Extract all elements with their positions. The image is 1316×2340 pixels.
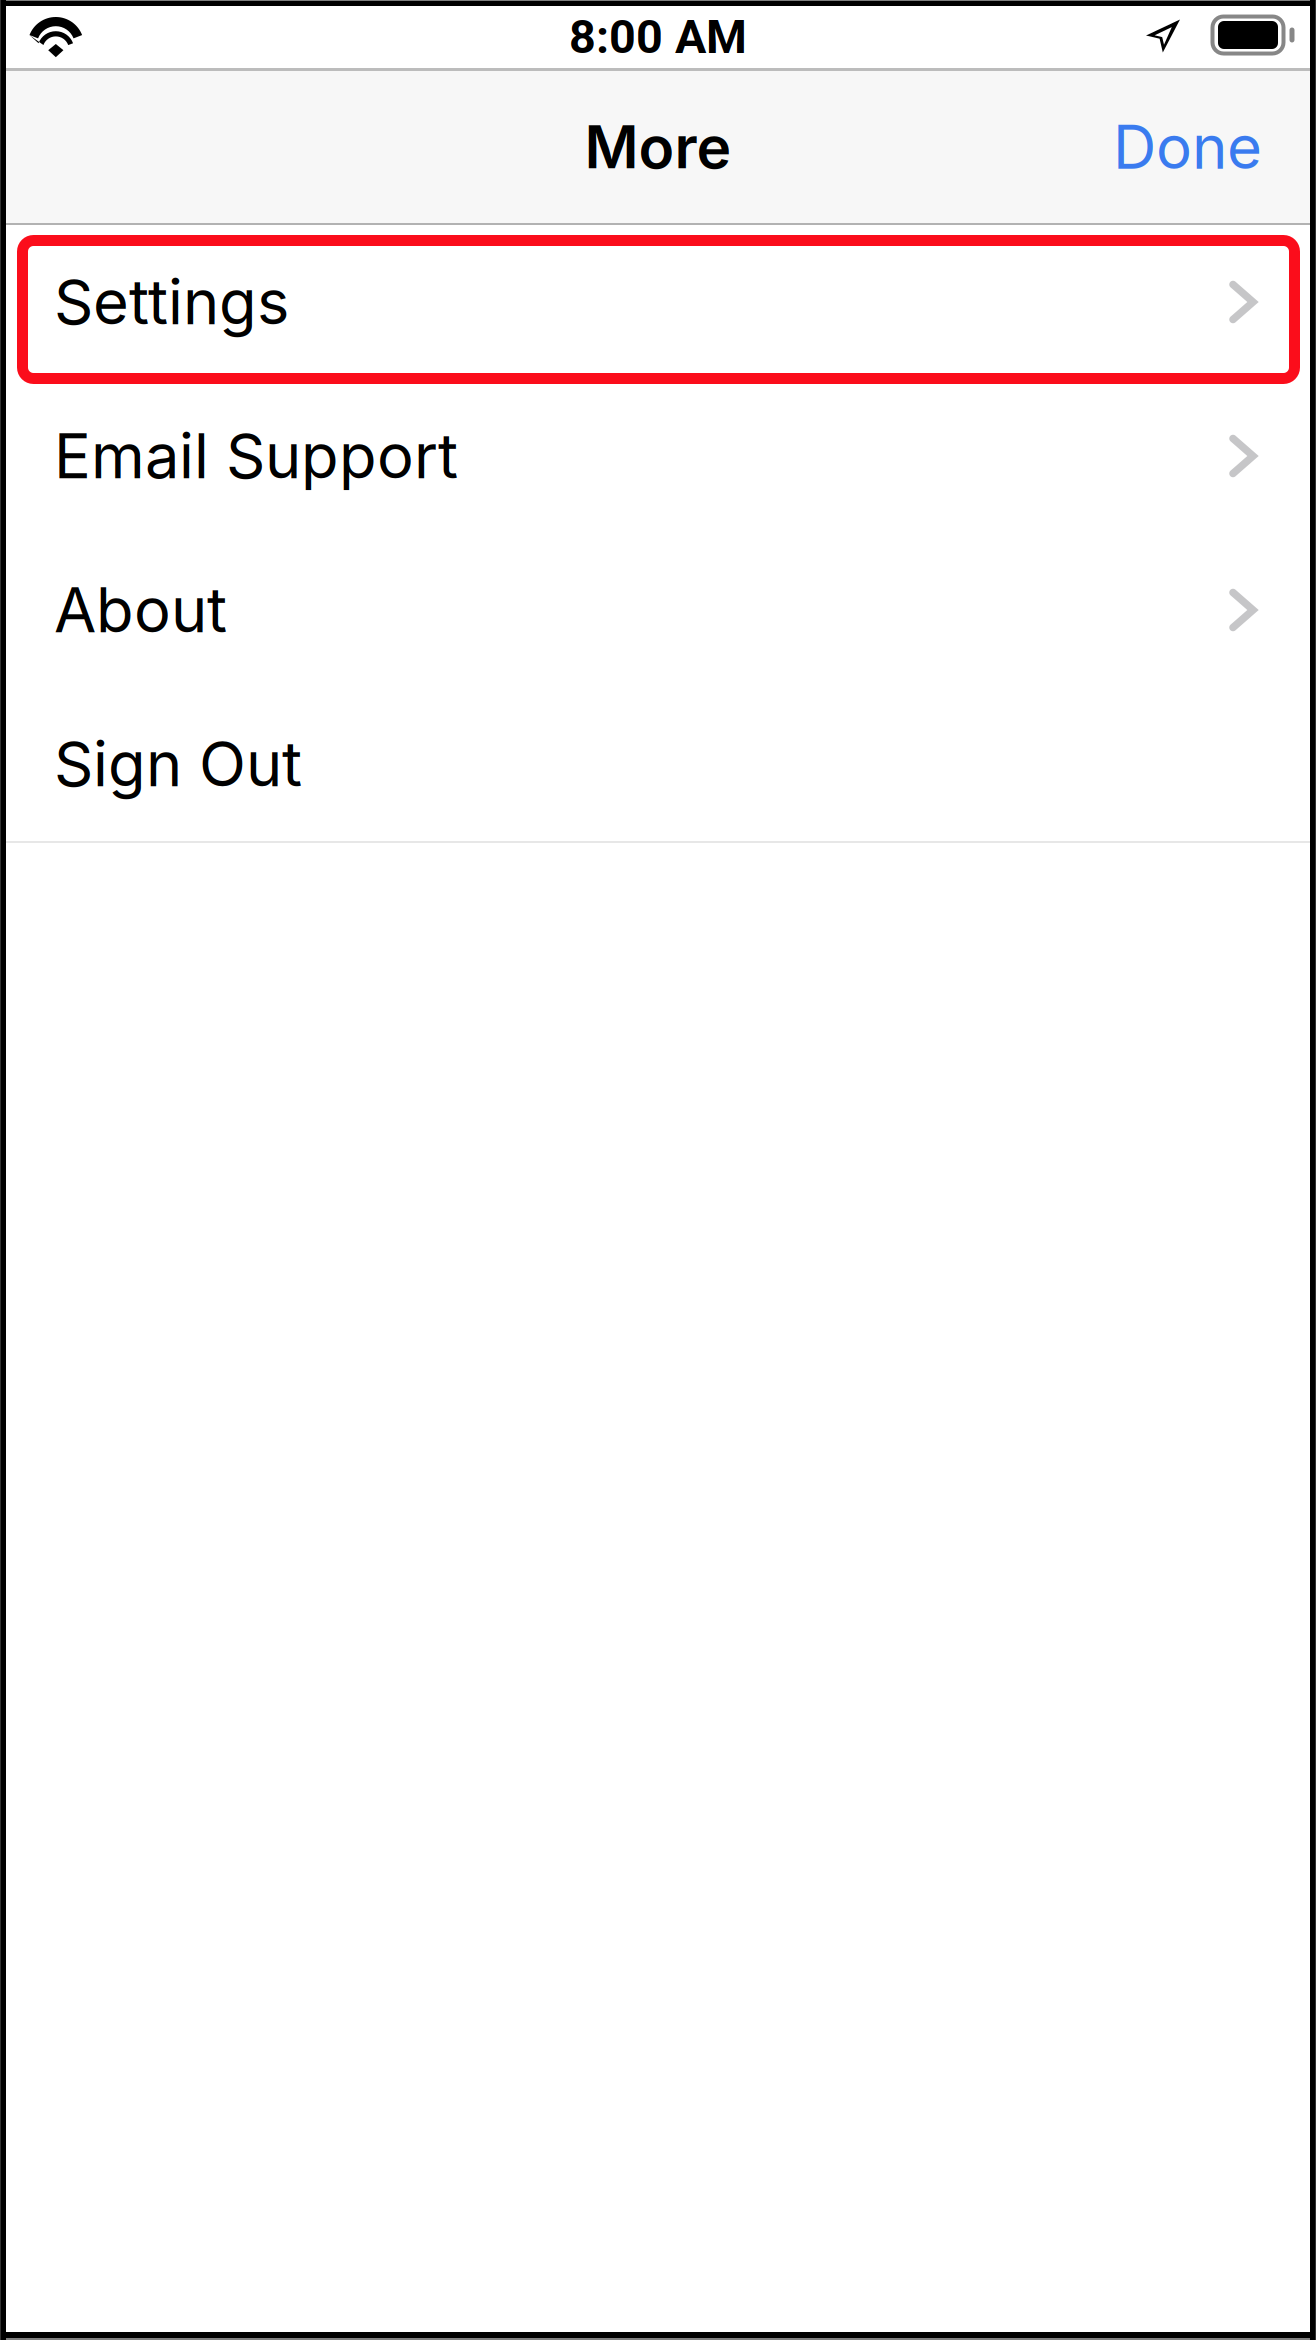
staticText: Settings xyxy=(54,265,289,339)
staticText: More xyxy=(584,111,731,182)
button[interactable]: Settings xyxy=(6,225,1310,379)
button[interactable]: Sign Out xyxy=(6,687,1310,841)
button[interactable]: Email Support xyxy=(6,379,1310,533)
staticText: Email Support xyxy=(54,419,458,493)
staticText: Done xyxy=(1113,111,1262,183)
button[interactable]: Done xyxy=(1083,89,1310,205)
staticText: Sign Out xyxy=(54,727,302,801)
staticText: 8:00 AM xyxy=(569,10,747,64)
button[interactable]: About xyxy=(6,533,1310,687)
staticText: About xyxy=(54,573,227,647)
